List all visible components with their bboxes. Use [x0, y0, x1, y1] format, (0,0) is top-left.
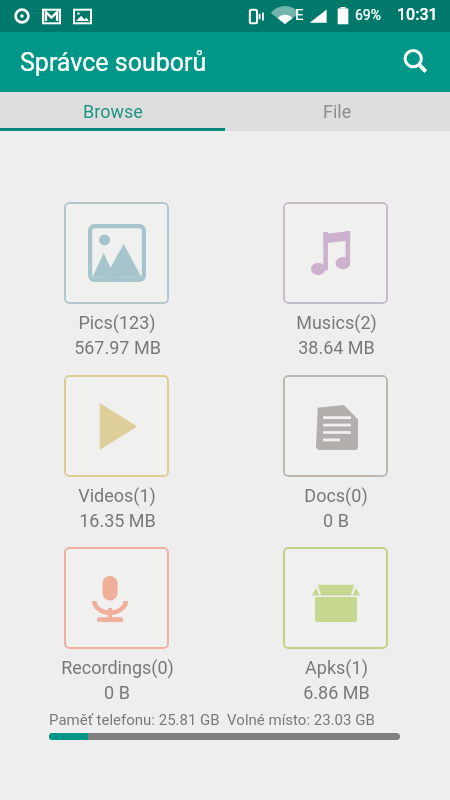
button[interactable]: Pics(123)	[64, 202, 169, 304]
staticText: E	[295, 6, 304, 24]
staticText: Paměť telefonu: 25.81 GB Volné místo: 23…	[49, 711, 375, 729]
staticText: Videos(1)	[78, 485, 156, 506]
staticText: Musics(2)	[296, 312, 377, 333]
button[interactable]: Apks(1)	[283, 547, 388, 649]
staticText: 10:31	[397, 5, 438, 24]
staticText: 69%	[355, 7, 381, 23]
button[interactable]: File	[225, 92, 450, 131]
staticText: 0 B	[104, 682, 130, 703]
button[interactable]: Docs(0)	[283, 375, 388, 477]
button[interactable]: Search	[392, 38, 440, 86]
button[interactable]: Browse	[0, 92, 225, 131]
staticText: Pics(123)	[78, 312, 156, 333]
staticText: 38.64 MB	[298, 337, 375, 358]
button[interactable]: Musics(2)	[283, 202, 388, 304]
staticText: Správce souborů	[20, 48, 207, 77]
staticText: File	[323, 101, 352, 122]
staticText: Docs(0)	[304, 485, 368, 506]
staticText: Apks(1)	[305, 657, 368, 678]
button[interactable]: Recordings(0)	[64, 547, 169, 649]
staticText: Recordings(0)	[61, 657, 174, 678]
staticText: 567.97 MB	[74, 337, 161, 358]
button[interactable]: Videos(1)	[64, 375, 169, 477]
staticText: 0 B	[323, 510, 349, 531]
staticText: 6.86 MB	[303, 682, 370, 703]
staticText: 16.35 MB	[79, 510, 156, 531]
staticText: Browse	[83, 101, 143, 122]
